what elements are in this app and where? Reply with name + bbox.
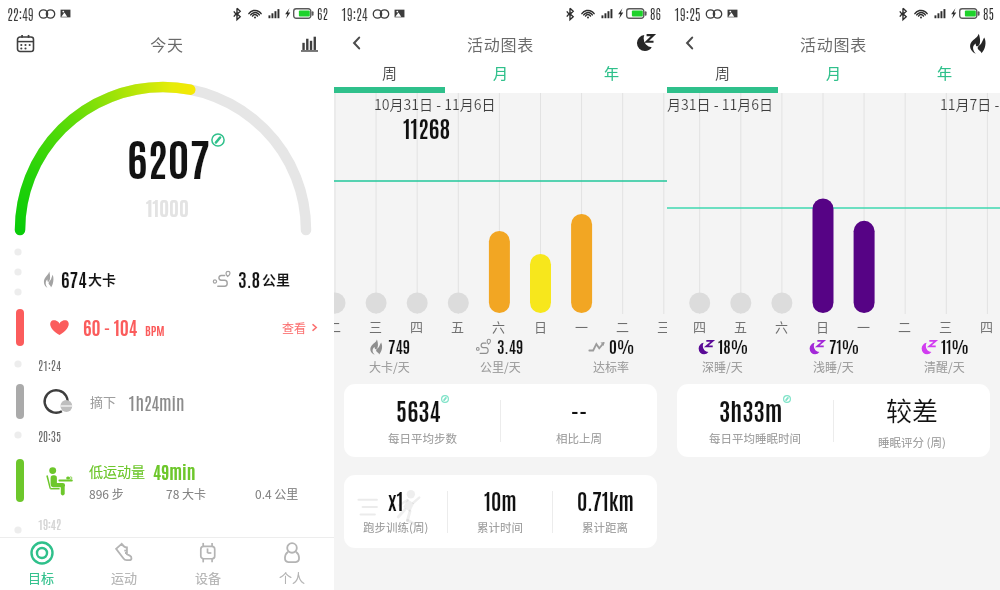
staticText: 深睡/天 (702, 358, 743, 375)
button[interactable]: Activity (964, 30, 990, 56)
staticText: 年 (604, 62, 620, 84)
staticText: -- (571, 394, 588, 425)
staticText: 公里/天 (480, 358, 521, 375)
staticText: 个人 (279, 568, 306, 587)
staticText: 累计时间 (477, 519, 523, 536)
staticText: 年 (937, 62, 953, 84)
staticText: 78 大卡 (166, 485, 207, 502)
staticText: 公里 (262, 269, 290, 289)
staticText: 20:35 (38, 428, 61, 444)
staticText: 低运动量 (89, 461, 145, 481)
staticText: 749 (388, 336, 411, 357)
staticText: 每日平均步数 (388, 430, 457, 447)
staticText: 19:42 (38, 516, 61, 532)
button[interactable]: x1 (344, 475, 657, 548)
button[interactable]: Calendar (12, 30, 38, 56)
button[interactable]: 低运动量 (0, 455, 334, 506)
staticText: 达标率 (593, 358, 630, 375)
staticText: 18% (718, 336, 748, 357)
staticText: 相比上周 (556, 430, 602, 447)
staticText: 五 (451, 317, 465, 336)
button[interactable]: Back (677, 30, 703, 56)
button[interactable]: Sleep (631, 30, 657, 56)
button[interactable]: 摘下 (0, 380, 334, 422)
button[interactable]: 月 (445, 59, 556, 87)
button[interactable]: 周 (334, 59, 445, 87)
staticText: 三 (369, 317, 383, 336)
staticText: 日 (534, 317, 548, 336)
staticText: 月31日 - 11月6日 (667, 94, 773, 114)
staticText: 0.71km (577, 487, 634, 514)
staticText: 3h33m (719, 394, 783, 425)
staticText: 二 (898, 317, 912, 336)
staticText: 三 (657, 317, 667, 336)
button[interactable]: 年 (556, 59, 667, 87)
staticText: 一 (575, 317, 589, 336)
staticText: 三 (939, 317, 953, 336)
staticText: 0.4 公里 (255, 485, 299, 502)
button[interactable]: 3h33m (677, 384, 990, 457)
staticText: 49min (153, 460, 196, 483)
staticText: 21:24 (38, 357, 61, 373)
staticText: 清醒/天 (924, 358, 965, 375)
staticText: 11268 (403, 112, 451, 142)
staticText: 每日平均睡眠时间 (709, 430, 801, 447)
staticText: 22:49 (7, 5, 34, 23)
staticText: 查看 (282, 319, 307, 336)
staticText: 一 (857, 317, 871, 336)
button[interactable]: 周 (667, 59, 778, 87)
staticText: 睡眠评分 (周) (878, 434, 946, 451)
button[interactable]: 60 - 104 (0, 305, 334, 349)
staticText: 二 (334, 317, 342, 336)
staticText: 3.49 (497, 336, 524, 357)
staticText: 3.8 (238, 267, 261, 291)
staticText: 19:25 (674, 5, 701, 23)
staticText: 62 (317, 5, 328, 22)
staticText: 6207 (127, 128, 210, 185)
staticText: 二 (616, 317, 630, 336)
button[interactable]: Back (344, 30, 370, 56)
staticText: 活动图表 (370, 32, 631, 55)
staticText: BPM (145, 322, 165, 338)
button[interactable]: Statistics (296, 30, 322, 56)
staticText: 1h24min (128, 390, 185, 413)
staticText: 跑步训练(周) (363, 519, 429, 536)
staticText: 四 (980, 317, 994, 336)
staticText: 60 - 104 (83, 315, 138, 339)
button[interactable]: 年 (889, 59, 1000, 87)
button[interactable]: 个人 (250, 538, 334, 590)
staticText: 月 (826, 62, 842, 84)
staticText: 11% (941, 336, 969, 357)
staticText: 86 (650, 5, 661, 22)
staticText: 大卡/天 (369, 358, 410, 375)
staticText: 周 (715, 62, 731, 84)
button[interactable]: 5634 (344, 384, 657, 457)
staticText: 活动图表 (703, 32, 964, 55)
staticText: 10m (484, 487, 517, 514)
button[interactable]: 设备 (166, 538, 250, 590)
staticText: 月 (493, 62, 509, 84)
button[interactable]: 目标 (0, 538, 83, 590)
staticText: 日 (816, 317, 830, 336)
staticText: 摘下 (90, 392, 117, 411)
staticText: 设备 (195, 568, 222, 587)
button[interactable]: 月 (778, 59, 889, 87)
staticText: 11000 (146, 194, 189, 220)
staticText: 896 步 (89, 485, 124, 502)
staticText: x1 (388, 487, 404, 514)
staticText: 运动 (111, 568, 138, 587)
staticText: 累计距离 (582, 519, 628, 536)
staticText: 大卡 (88, 269, 116, 289)
staticText: 四 (693, 317, 707, 336)
staticText: 674 (61, 267, 87, 291)
staticText: 0% (609, 336, 635, 357)
staticText: 六 (492, 317, 506, 336)
staticText: 11月7日 - (940, 94, 1000, 114)
staticText: 19:24 (341, 5, 368, 23)
staticText: 今天 (38, 32, 296, 55)
staticText: 五 (734, 317, 748, 336)
staticText: 目标 (28, 568, 55, 587)
staticText: 71% (829, 336, 859, 357)
button[interactable]: 运动 (83, 538, 166, 590)
staticText: 浅睡/天 (813, 358, 854, 375)
